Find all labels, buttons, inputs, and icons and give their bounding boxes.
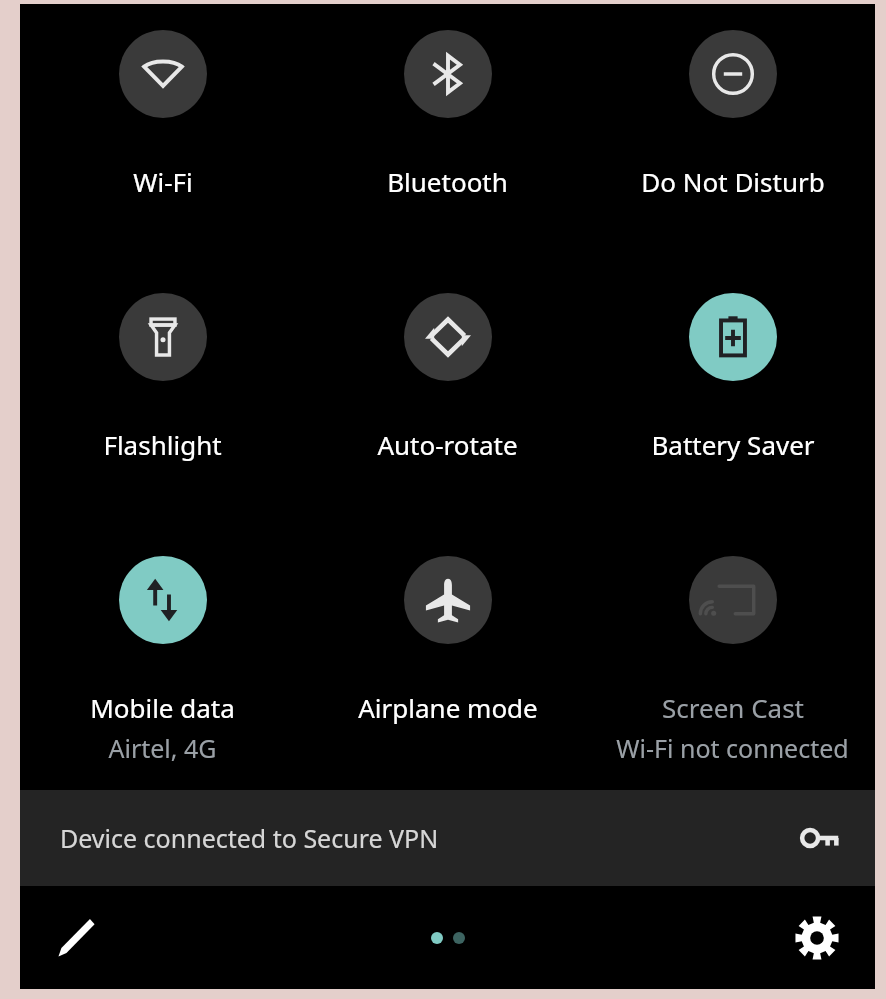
staticText: Do Not Disturb [641, 164, 825, 199]
button[interactable]: Bluetooth [305, 30, 590, 199]
staticText: Airplane mode [358, 690, 538, 725]
staticText: Device connected to Secure VPN [60, 821, 439, 855]
button[interactable]: Screen Cast [590, 556, 875, 765]
button[interactable]: Edit tiles [42, 906, 106, 970]
staticText: Airtel, 4G [108, 731, 217, 765]
button[interactable]: Airplane mode [305, 556, 590, 725]
button[interactable]: Auto-rotate [305, 293, 590, 462]
button[interactable]: Do Not Disturb [590, 30, 875, 199]
button[interactable]: Settings [785, 906, 849, 970]
button[interactable]: Battery Saver [590, 293, 875, 462]
staticText: Wi-Fi not connected [616, 731, 849, 765]
button[interactable]: Flashlight [20, 293, 305, 462]
staticText: Wi-Fi [133, 164, 193, 199]
staticText: Screen Cast [662, 690, 804, 725]
staticText: Flashlight [103, 427, 222, 462]
button[interactable]: Device connected to Secure VPN [20, 790, 875, 886]
staticText: Battery Saver [651, 427, 815, 462]
button[interactable]: Wi-Fi [20, 30, 305, 199]
staticText: Bluetooth [387, 164, 508, 199]
button[interactable]: Mobile data [20, 556, 305, 765]
staticText: Auto-rotate [377, 427, 518, 462]
staticText: Mobile data [90, 690, 235, 725]
